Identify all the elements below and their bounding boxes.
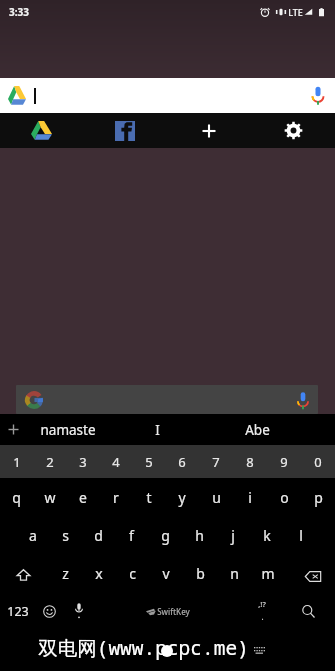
button[interactable]: x — [82, 554, 115, 592]
button[interactable]: Drive — [0, 113, 83, 148]
staticText: SwiftKey — [157, 606, 190, 617]
button[interactable]: c — [115, 554, 149, 592]
staticText: f — [129, 526, 134, 545]
button[interactable]: h — [182, 516, 216, 554]
button[interactable]: 0 — [301, 445, 335, 478]
staticText: j — [231, 526, 235, 545]
staticText: n — [230, 564, 239, 583]
staticText: s — [62, 526, 69, 545]
button[interactable]: 2 — [33, 445, 66, 478]
staticText: l — [299, 526, 303, 545]
button[interactable]: j — [216, 516, 250, 554]
button[interactable]: Voice search — [307, 85, 329, 107]
button[interactable]: SwiftKey — [94, 592, 242, 631]
button[interactable]: q — [0, 478, 33, 516]
staticText: o — [280, 488, 289, 507]
button[interactable]: 8 — [233, 445, 267, 478]
button[interactable]: d — [82, 516, 115, 554]
button[interactable]: r — [99, 478, 132, 516]
button[interactable]: o — [267, 478, 301, 516]
staticText: v — [162, 564, 170, 583]
staticText: c — [129, 564, 136, 583]
staticText: 7 — [212, 453, 220, 471]
button[interactable]: b — [183, 554, 217, 592]
button[interactable]: namaste — [27, 414, 109, 445]
button[interactable]: s — [49, 516, 82, 554]
staticText: I — [155, 421, 160, 439]
button[interactable]: 1 — [0, 445, 33, 478]
button[interactable]: Abe — [206, 414, 335, 445]
button[interactable]: v — [149, 554, 183, 592]
button[interactable]: Search — [281, 592, 335, 631]
button[interactable]: n — [217, 554, 251, 592]
staticText: Abe — [245, 421, 270, 439]
staticText: m — [261, 564, 275, 583]
staticText: 5 — [145, 453, 153, 471]
button[interactable]: Voice search — [294, 391, 312, 409]
staticText: t — [146, 488, 152, 507]
button[interactable]: Settings — [251, 113, 335, 148]
button[interactable]: i — [233, 478, 267, 516]
button[interactable]: Voice search — [0, 78, 335, 113]
button[interactable]: 7 — [199, 445, 233, 478]
button[interactable]: Back — [0, 631, 111, 671]
staticText: 123 — [7, 603, 29, 620]
button[interactable]: y — [165, 478, 199, 516]
button[interactable]: m — [251, 554, 285, 592]
staticText: g — [161, 526, 170, 545]
staticText: 1 — [13, 453, 21, 471]
staticText: k — [263, 526, 271, 545]
button[interactable]: 123 — [0, 592, 35, 631]
button[interactable]: k — [250, 516, 284, 554]
button[interactable]: u — [199, 478, 233, 516]
button[interactable]: Add to dictionary — [0, 414, 27, 445]
button[interactable]: Backspace — [285, 554, 335, 592]
button[interactable]: f — [115, 516, 148, 554]
staticText: r — [113, 488, 119, 507]
staticText: e — [79, 488, 87, 507]
staticText: q — [12, 488, 21, 507]
staticText: y — [178, 488, 186, 507]
staticText: ,!? — [258, 599, 266, 609]
staticText: i — [248, 488, 252, 507]
staticText: h — [195, 526, 204, 545]
staticText: 9 — [280, 453, 288, 471]
button[interactable]: Voice input — [64, 592, 94, 631]
staticText: x — [95, 564, 103, 583]
button[interactable]: t — [132, 478, 165, 516]
staticText: a — [29, 526, 37, 545]
button[interactable]: Emoji — [35, 592, 64, 631]
button[interactable]: w — [33, 478, 66, 516]
button[interactable]: z — [49, 554, 82, 592]
button[interactable]: a — [16, 516, 49, 554]
staticText: 0 — [314, 453, 322, 471]
staticText: 双电网(www.pcpc.me) — [38, 634, 249, 661]
staticText: u — [212, 488, 221, 507]
button[interactable]: 5 — [132, 445, 165, 478]
button[interactable]: Add — [167, 113, 251, 148]
button[interactable]: ,!? — [242, 592, 281, 631]
button[interactable]: Voice search — [16, 385, 318, 414]
button[interactable]: g — [148, 516, 182, 554]
button[interactable]: Hide keyboard — [223, 631, 335, 671]
button[interactable]: 4 — [99, 445, 132, 478]
staticText: 8 — [246, 453, 254, 471]
staticText: namaste — [40, 421, 96, 439]
button[interactable]: Home — [111, 631, 223, 671]
staticText: b — [196, 564, 205, 583]
button[interactable]: 3 — [66, 445, 99, 478]
staticText: 6 — [178, 453, 186, 471]
button[interactable]: p — [301, 478, 335, 516]
staticText: LTE — [288, 6, 303, 18]
button[interactable]: e — [66, 478, 99, 516]
staticText: d — [94, 526, 103, 545]
button[interactable]: Shift — [0, 554, 49, 592]
button[interactable]: l — [284, 516, 318, 554]
button[interactable]: 6 — [165, 445, 199, 478]
staticText: p — [314, 488, 323, 507]
staticText: z — [62, 564, 69, 583]
button[interactable]: I — [109, 414, 206, 445]
button[interactable]: 9 — [267, 445, 301, 478]
staticText: 3 — [79, 453, 87, 471]
button[interactable]: Facebook — [83, 113, 167, 148]
